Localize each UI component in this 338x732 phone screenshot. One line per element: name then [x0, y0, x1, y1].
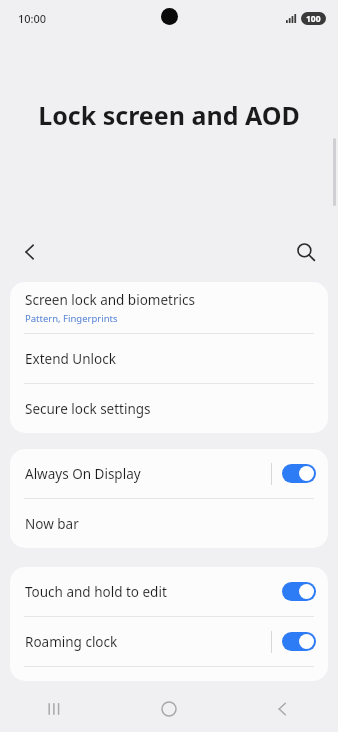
staticText: Now bar — [25, 515, 79, 533]
staticText: Lock screen and AOD — [22, 98, 316, 132]
button[interactable]: Recents — [0, 686, 112, 732]
button[interactable]: Always On Display — [10, 449, 328, 498]
staticText: Extend Unlock — [25, 350, 116, 368]
button[interactable]: Home — [112, 686, 225, 732]
staticText: Screen lock and biometrics — [25, 291, 195, 309]
button[interactable]: Extend Unlock — [10, 334, 328, 383]
button[interactable]: Touch and hold to edit — [282, 582, 316, 601]
button[interactable]: Roaming clock — [10, 617, 328, 666]
button[interactable]: Touch and hold to edit — [10, 567, 328, 616]
staticText: Secure lock settings — [25, 400, 151, 418]
button[interactable]: Now bar — [10, 499, 328, 548]
button[interactable]: Back — [225, 686, 338, 732]
button[interactable]: Back — [12, 234, 48, 270]
button[interactable]: Roaming clock — [282, 632, 316, 651]
staticText: Roaming clock — [25, 633, 118, 651]
staticText: Always On Display — [25, 465, 141, 483]
button[interactable]: Always On Display — [282, 464, 316, 483]
staticText: Pattern, Fingerprints — [25, 312, 118, 325]
staticText: 10:00 — [18, 11, 47, 26]
staticText: 100 — [306, 13, 321, 25]
button[interactable]: Screen lock and biometrics — [10, 282, 328, 333]
staticText: Touch and hold to edit — [25, 583, 167, 601]
button[interactable]: Secure lock settings — [10, 384, 328, 433]
button[interactable]: Search — [288, 234, 324, 270]
